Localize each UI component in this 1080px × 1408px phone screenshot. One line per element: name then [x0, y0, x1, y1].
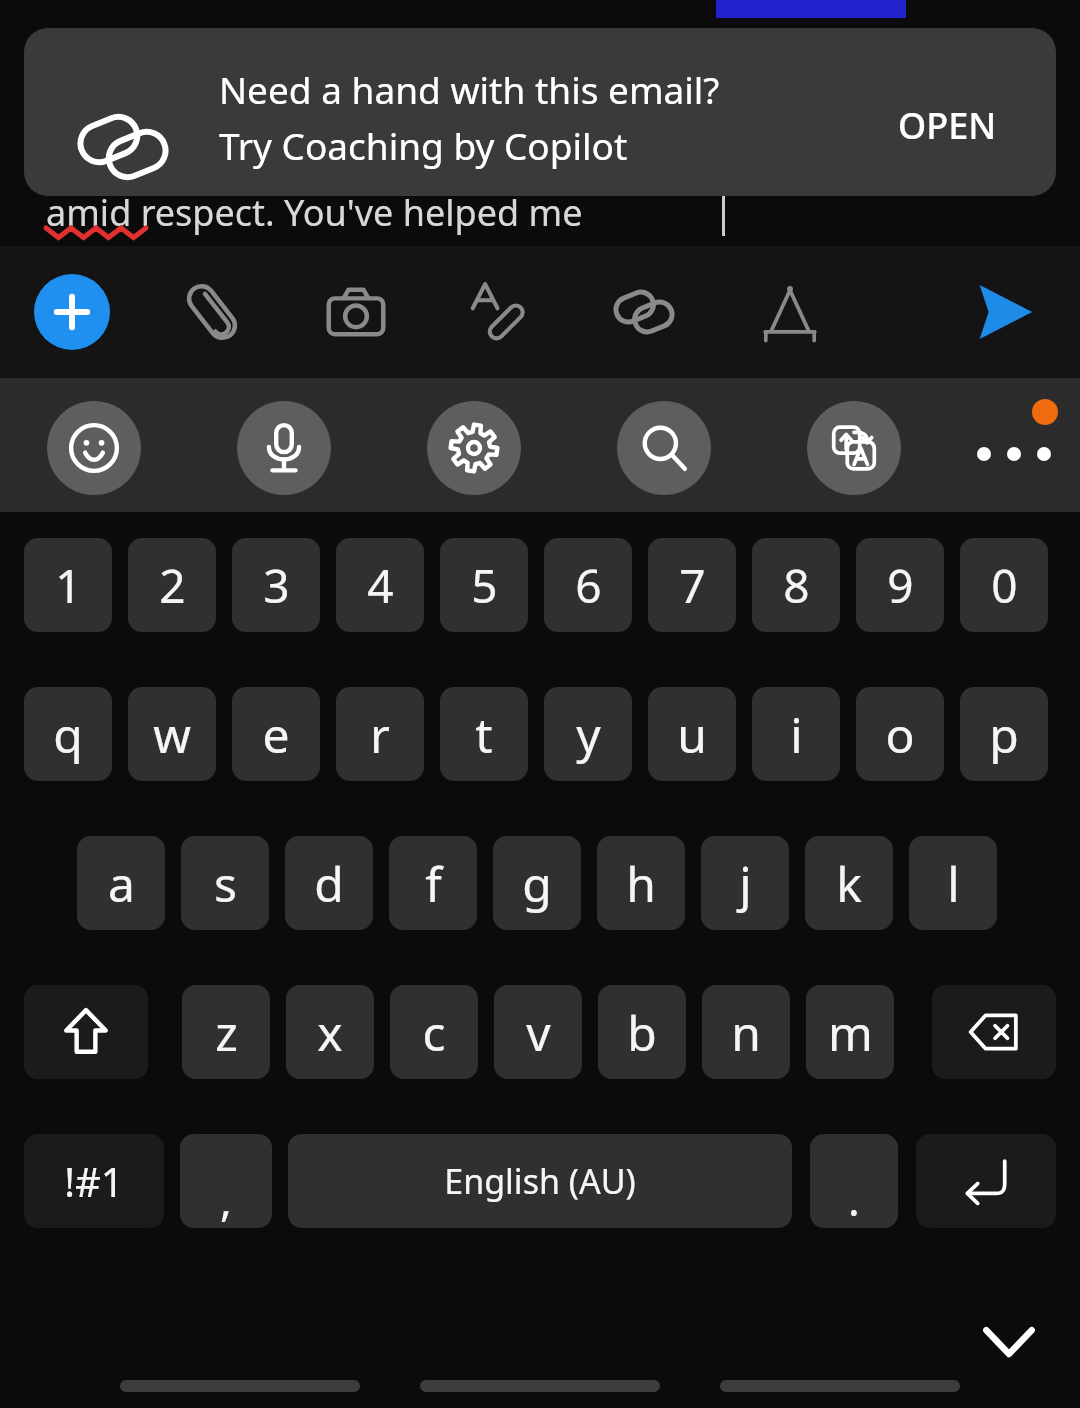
button[interactable]: p [960, 687, 1048, 781]
button[interactable]: 1 [24, 538, 112, 632]
button[interactable]: Attach file [172, 272, 252, 352]
button[interactable]: 3 [232, 538, 320, 632]
button[interactable]: Shift [24, 985, 148, 1079]
button[interactable]: m [806, 985, 894, 1079]
button[interactable]: g [493, 836, 581, 930]
staticText: v [526, 1000, 551, 1065]
button[interactable]: n [702, 985, 790, 1079]
button[interactable]: l [909, 836, 997, 930]
button[interactable]: x [286, 985, 374, 1079]
button[interactable]: u [648, 687, 736, 781]
staticText: e [262, 702, 290, 767]
button[interactable]: h [597, 836, 685, 930]
staticText: 0 [991, 554, 1018, 617]
staticText: . [848, 1169, 860, 1228]
button[interactable]: a [77, 836, 165, 930]
button[interactable]: c [390, 985, 478, 1079]
button[interactable]: y [544, 687, 632, 781]
staticText: z [215, 1000, 238, 1065]
button[interactable]: o [856, 687, 944, 781]
staticText: w [153, 702, 191, 767]
button[interactable]: Backspace [932, 985, 1056, 1079]
staticText: 1 [55, 554, 82, 617]
staticText: j [739, 851, 752, 916]
staticText: 3 [263, 554, 290, 617]
button[interactable]: , [180, 1134, 272, 1228]
button[interactable]: Search [617, 401, 711, 495]
staticText: p [989, 702, 1019, 767]
staticText: s [214, 851, 237, 916]
button[interactable]: Copilot [604, 272, 684, 352]
button[interactable]: s [181, 836, 269, 930]
button[interactable]: 4 [336, 538, 424, 632]
staticText: Try Coaching by Copilot [219, 120, 628, 170]
staticText: x [317, 1000, 343, 1065]
button[interactable]: Keyboard settings [427, 401, 521, 495]
staticText: Need a hand with this email? [219, 64, 720, 114]
button[interactable]: !#1 [24, 1134, 164, 1228]
staticText: OPEN [898, 101, 997, 150]
staticText: b [627, 1000, 657, 1065]
staticText: 9 [887, 554, 914, 617]
button[interactable]: English (AU) [288, 1134, 792, 1228]
button[interactable]: t [440, 687, 528, 781]
button[interactable]: Camera [316, 272, 396, 352]
button[interactable]: i [752, 687, 840, 781]
button[interactable]: OPEN [862, 90, 1032, 160]
button[interactable]: 0 [960, 538, 1048, 632]
staticText: r [370, 702, 390, 767]
button[interactable]: Text formatting [750, 272, 830, 352]
staticText: u [677, 702, 707, 767]
button[interactable]: q [24, 687, 112, 781]
button[interactable]: f [389, 836, 477, 930]
button[interactable]: r [336, 687, 424, 781]
staticText: n [731, 1000, 761, 1065]
staticText: k [836, 851, 862, 916]
button[interactable]: Add attachment [34, 274, 110, 350]
button[interactable]: 5 [440, 538, 528, 632]
button[interactable]: Send [964, 272, 1044, 352]
button[interactable]: v [494, 985, 582, 1079]
staticText: 5 [471, 554, 498, 617]
staticText: o [885, 702, 915, 767]
staticText: t [475, 702, 493, 767]
button[interactable]: 2 [128, 538, 216, 632]
button[interactable]: Hide keyboard [968, 1300, 1050, 1382]
button[interactable]: 6 [544, 538, 632, 632]
staticText: m [828, 1000, 873, 1065]
staticText: , [220, 1169, 232, 1228]
button[interactable]: j [701, 836, 789, 930]
button[interactable]: d [285, 836, 373, 930]
staticText: i [790, 702, 803, 767]
staticText: 7 [679, 554, 706, 617]
staticText: English (AU) [444, 1158, 636, 1204]
staticText: amid respect. You've helped me [46, 188, 583, 237]
button[interactable]: k [805, 836, 893, 930]
staticText: 4 [367, 554, 394, 617]
staticText: q [53, 702, 83, 767]
button[interactable]: . [810, 1134, 898, 1228]
button[interactable]: Emoji [47, 401, 141, 495]
staticText: h [626, 851, 656, 916]
button[interactable]: Enter [916, 1134, 1056, 1228]
button[interactable]: 7 [648, 538, 736, 632]
staticText: !#1 [64, 1154, 124, 1208]
button[interactable]: b [598, 985, 686, 1079]
staticText: c [422, 1000, 446, 1065]
staticText: f [425, 851, 442, 916]
button[interactable]: w [128, 687, 216, 781]
staticText: l [947, 851, 960, 916]
staticText: a [108, 851, 135, 916]
button[interactable]: More options [966, 400, 1062, 496]
staticText: g [522, 851, 552, 916]
button[interactable]: Markup [460, 272, 540, 352]
button[interactable]: e [232, 687, 320, 781]
staticText: y [576, 702, 601, 767]
button[interactable]: 9 [856, 538, 944, 632]
button[interactable]: Translate [807, 401, 901, 495]
button[interactable]: Need a hand with this email? [24, 28, 1056, 196]
staticText: 2 [159, 554, 186, 617]
button[interactable]: 8 [752, 538, 840, 632]
button[interactable]: z [182, 985, 270, 1079]
button[interactable]: Voice input [237, 401, 331, 495]
